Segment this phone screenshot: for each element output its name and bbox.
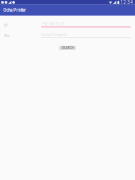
staticText: No: [4, 33, 9, 38]
staticText: Ocha Printer 01: [41, 32, 67, 37]
staticText: Ocha Printer: [3, 7, 26, 13]
button[interactable]: SEARCH: [59, 46, 76, 50]
staticText: 192.168.11.21: [41, 21, 64, 26]
staticText: IP: [4, 23, 7, 28]
staticText: SEARCH: [61, 46, 73, 50]
staticText: 12:34: [120, 0, 133, 5]
